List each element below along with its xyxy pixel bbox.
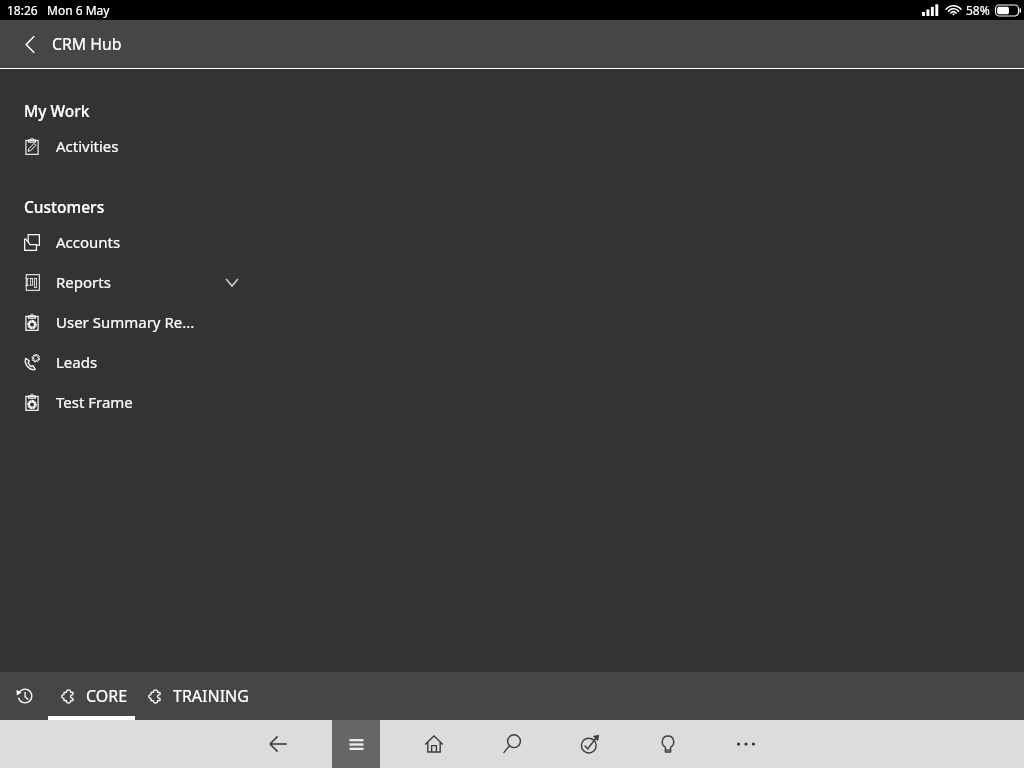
staticText: Test Frame [56,392,133,412]
staticText: Reports [56,272,111,292]
button[interactable]: User Summary Re... [0,302,1024,342]
button[interactable]: Search [473,720,551,768]
staticText: My Work [24,100,90,121]
button[interactable]: Menu [332,720,380,768]
staticText: TRAINING [173,685,249,707]
staticText: Customers [24,196,105,217]
button[interactable]: Explore [551,720,629,768]
button[interactable]: Reports [0,262,1024,302]
staticText: Mon 6 May [47,2,110,18]
button[interactable]: Test Frame [0,382,1024,422]
button[interactable]: Home [395,720,473,768]
button[interactable]: Recent [0,672,48,720]
staticText: CORE [86,685,128,707]
staticText: 18:26 [7,2,38,18]
staticText: User Summary Re... [56,312,195,332]
button[interactable]: Activities [0,126,1024,166]
staticText: Accounts [56,232,121,252]
button[interactable]: Accounts [0,222,1024,262]
button[interactable]: Tips [629,720,707,768]
staticText: Activities [56,136,119,156]
button[interactable]: TRAINING [135,672,255,720]
button[interactable]: Leads [0,342,1024,382]
staticText: CRM Hub [52,33,122,55]
staticText: 58% [966,2,990,18]
button[interactable]: More [707,720,785,768]
button[interactable]: Back [254,720,302,768]
button[interactable]: Back [6,20,54,68]
staticText: Leads [56,352,98,372]
button[interactable]: CORE [48,672,135,720]
